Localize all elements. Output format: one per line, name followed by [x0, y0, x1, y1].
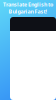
staticText: Bulgarian Fast!	[8, 8, 47, 15]
staticText: Translate English to	[3, 1, 53, 8]
